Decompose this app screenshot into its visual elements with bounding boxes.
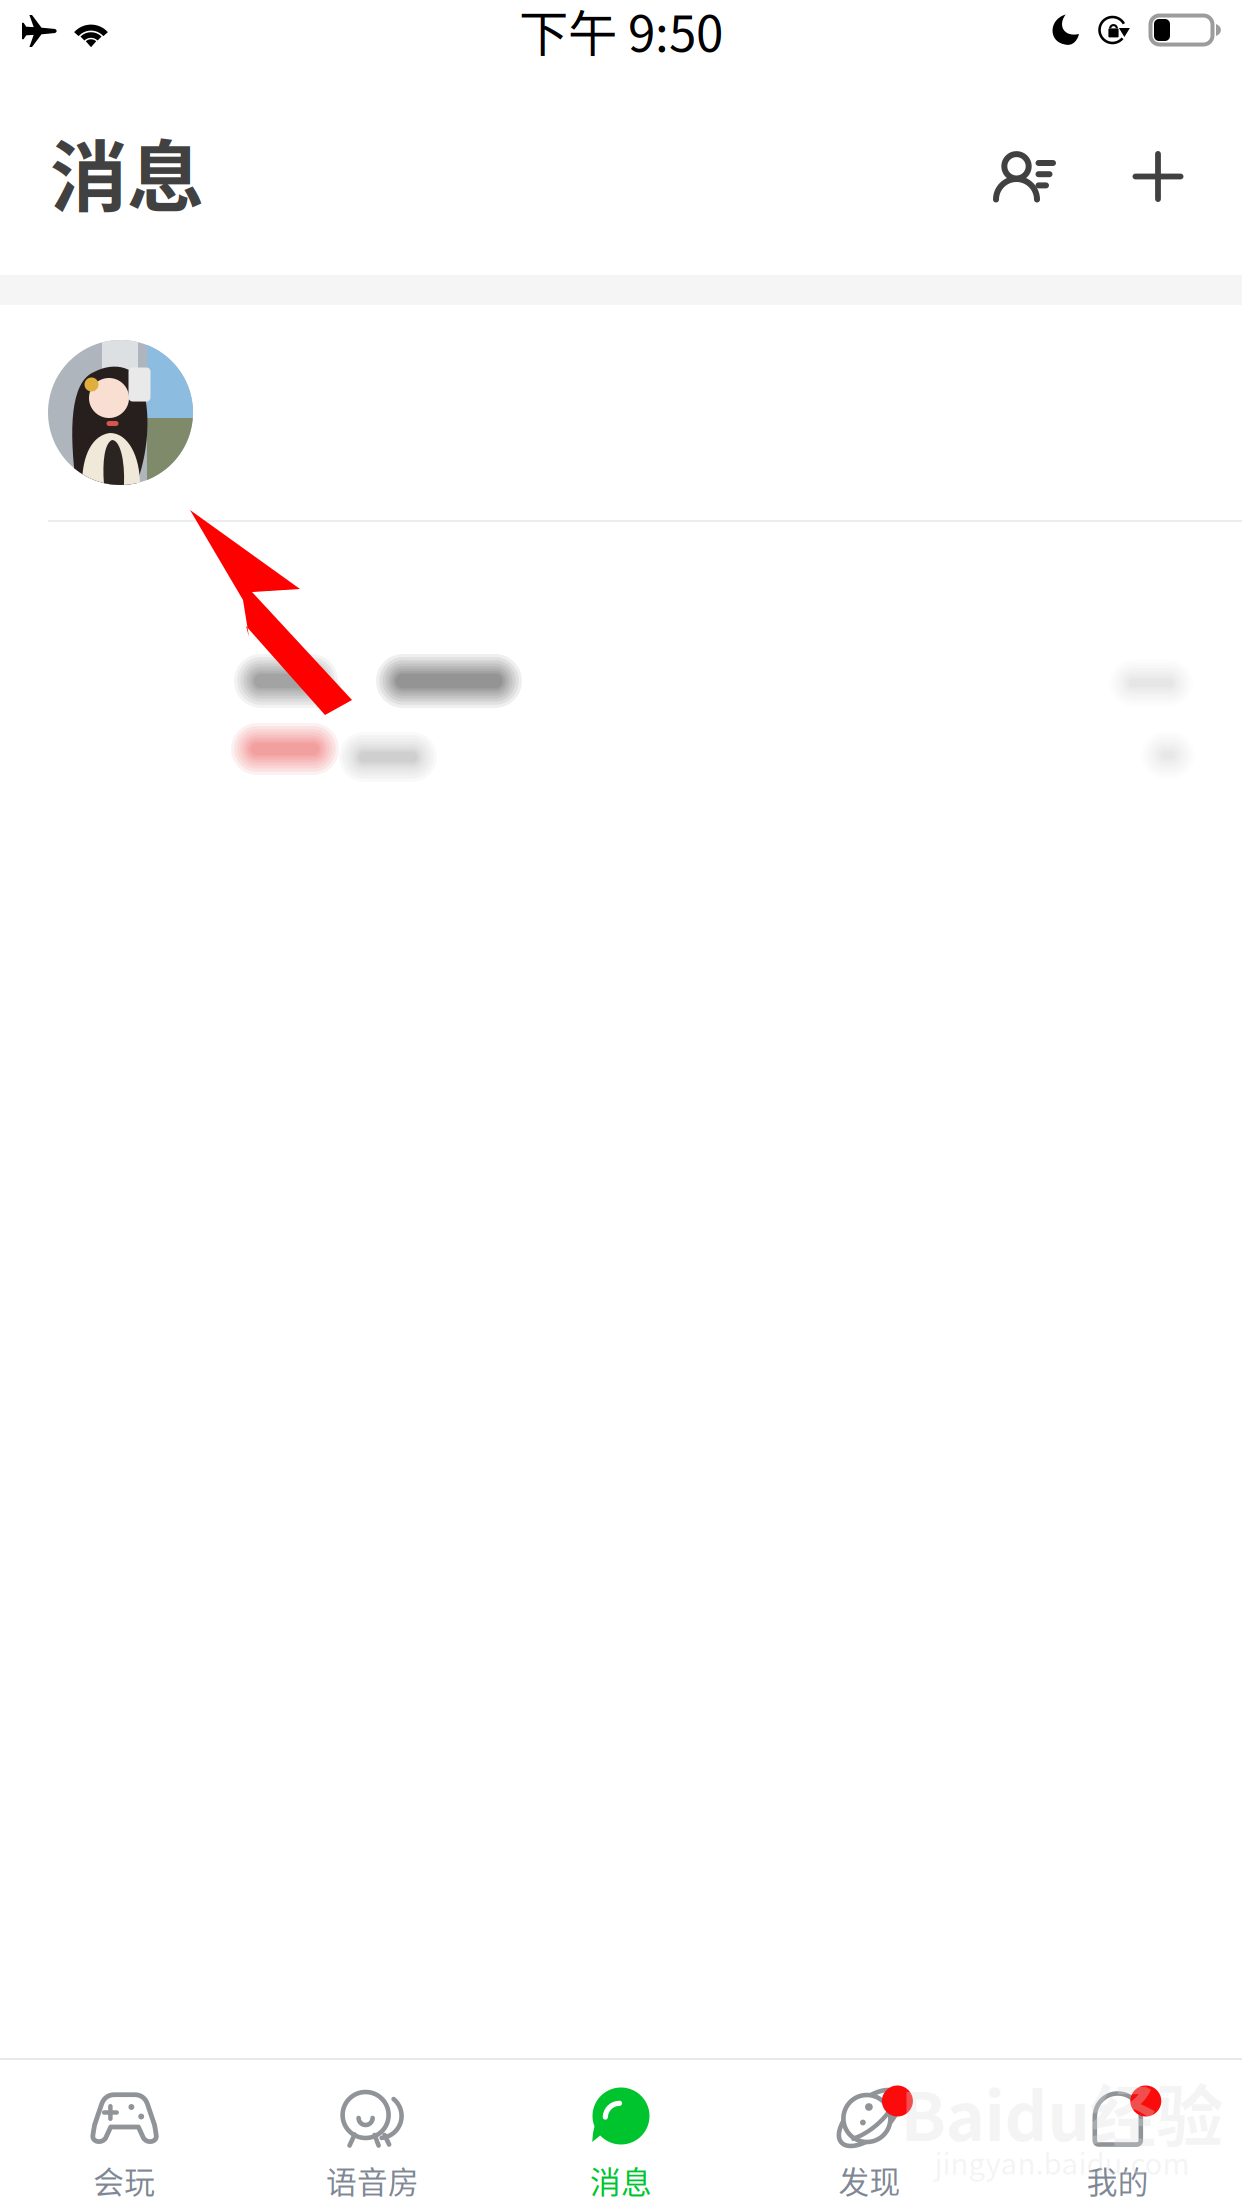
staticText: 消息 (50, 115, 204, 227)
staticText: 消息 (590, 2158, 652, 2202)
button[interactable]: 添加 (1098, 98, 1218, 236)
button[interactable]: 会玩 (0, 2060, 248, 2208)
button[interactable]: 语音房 (248, 2060, 497, 2208)
button[interactable]: 我的 (994, 2060, 1242, 2208)
staticText: Baidu经验 (900, 2064, 1223, 2160)
button[interactable]: 联系人 (964, 98, 1084, 236)
staticText: 发现 (838, 2158, 900, 2202)
button[interactable]: 消息 (497, 2060, 745, 2208)
staticText: jingyan.baidu.com (934, 2141, 1189, 2183)
staticText: 下午 9:50 (519, 0, 723, 66)
staticText: 语音房 (326, 2158, 419, 2202)
button[interactable] (0, 305, 1242, 520)
staticText: 我的 (1087, 2158, 1149, 2202)
button[interactable]: 发现 (745, 2060, 994, 2208)
staticText: 会玩 (93, 2158, 155, 2202)
